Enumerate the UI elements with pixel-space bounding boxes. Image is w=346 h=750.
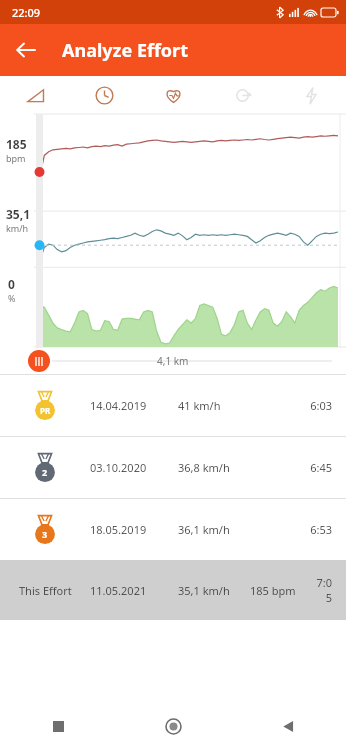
staticText: 41 km/h [178,398,221,413]
button[interactable]: Cadence [208,76,277,114]
button[interactable]: Elevation [0,76,70,114]
staticText: 185 [6,136,27,152]
staticText: 6:53 [310,522,332,537]
staticText: % [8,292,16,304]
staticText: This Effort [19,583,72,598]
staticText: 22:09 [12,5,41,20]
staticText: 7:05 [312,575,332,605]
staticText: km/h [6,222,29,234]
staticText: 14.04.2019 [90,398,147,413]
button[interactable]: Home [116,702,231,750]
staticText: PR [40,405,51,416]
button[interactable]: 3 [0,499,346,560]
staticText: 03.10.2020 [90,460,147,475]
button[interactable]: Time [70,76,139,114]
button[interactable]: This Effort [0,560,346,620]
staticText: 6:03 [310,398,332,413]
button[interactable]: Power [277,76,346,114]
staticText: bpm [6,152,26,164]
button[interactable]: PR [0,375,346,436]
button[interactable]: Scrub position [28,350,50,372]
button[interactable]: Heart rate [139,76,208,114]
staticText: 3 [42,528,48,540]
staticText: 185 bpm [250,583,296,598]
button[interactable]: Back [6,30,46,70]
button[interactable]: 2 [0,437,346,498]
button[interactable]: Recent apps [0,702,116,750]
staticText: 36,8 km/h [178,460,230,475]
staticText: 35,1 km/h [178,583,230,598]
staticText: 6:45 [310,460,332,475]
staticText: 0 [8,276,15,292]
button[interactable]: Back [231,702,346,750]
staticText: Analyze Effort [62,38,188,63]
staticText: 4,1 km [157,354,189,368]
staticText: 18.05.2019 [90,522,147,537]
staticText: 11.05.2021 [90,583,147,598]
staticText: 36,1 km/h [178,522,230,537]
staticText: 2 [42,466,48,478]
staticText: 35,1 [6,206,31,222]
